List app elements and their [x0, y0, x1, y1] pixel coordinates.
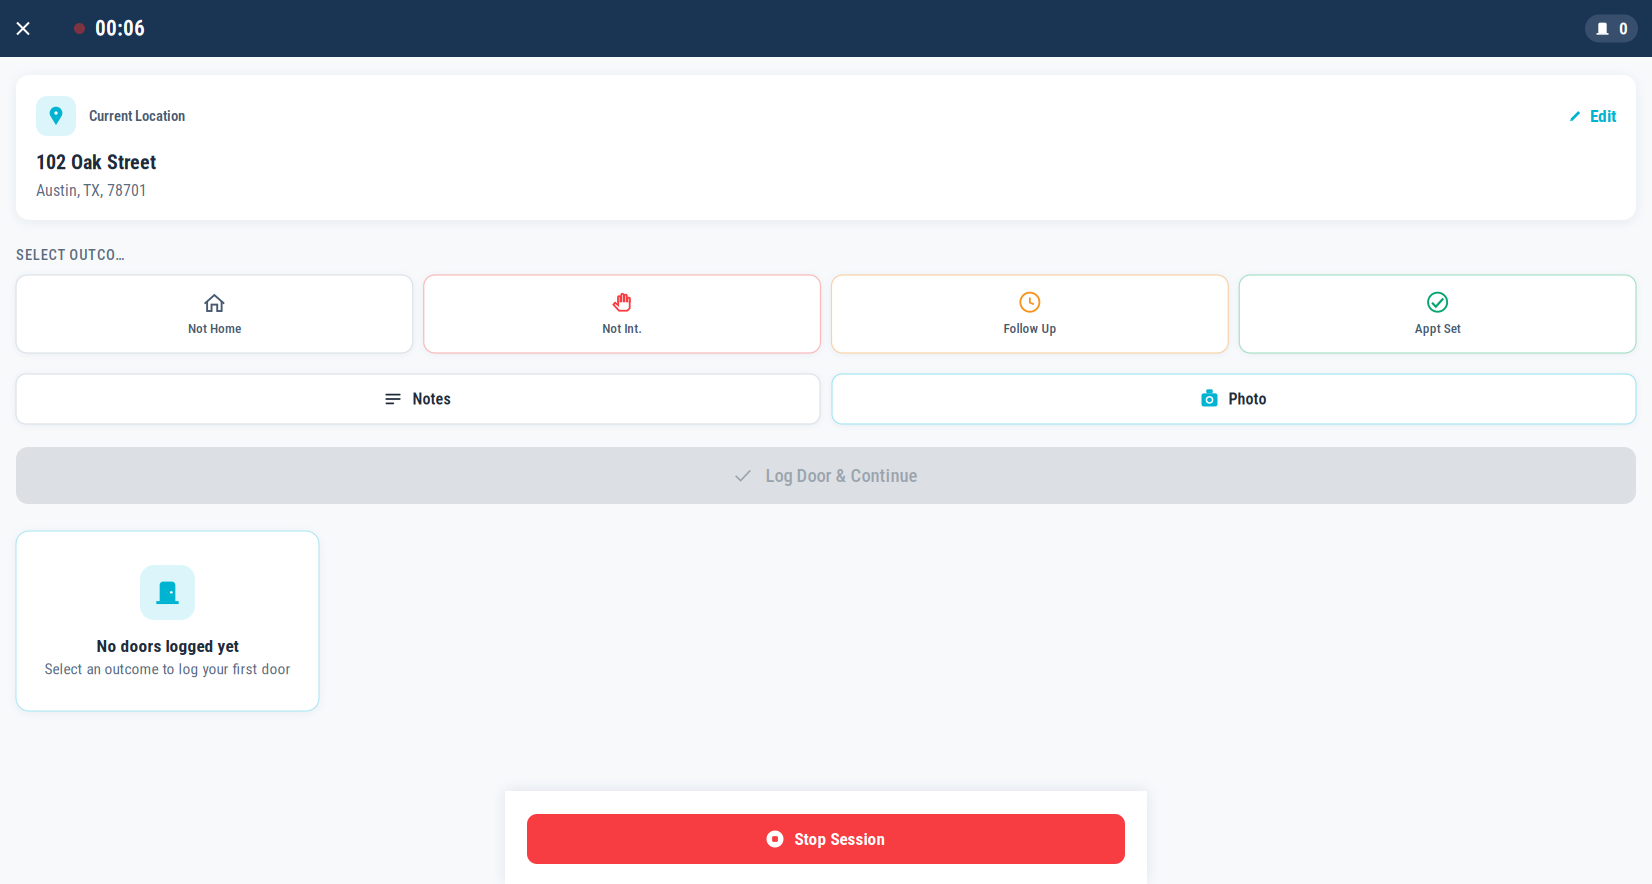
button[interactable]: Edit	[1569, 106, 1616, 126]
staticText: Appt Set	[1415, 321, 1461, 336]
button[interactable]: Not Int.	[424, 275, 821, 353]
staticText: Not Home	[188, 321, 241, 336]
button[interactable]: Not Home	[16, 275, 413, 353]
button[interactable]: Photo	[832, 374, 1636, 424]
staticText: Select an outcome to log your first door	[44, 660, 290, 678]
staticText: 102 Oak Street	[36, 151, 156, 174]
staticText: No doors logged yet	[96, 636, 238, 656]
staticText: Follow Up	[1003, 321, 1056, 336]
button[interactable]: Close	[0, 5, 46, 51]
staticText: Notes	[412, 390, 450, 408]
button[interactable]: Appt Set	[1239, 275, 1636, 353]
button[interactable]: Notes	[16, 374, 820, 424]
staticText: Photo	[1228, 390, 1266, 408]
button[interactable]: Doors logged: 0	[1585, 14, 1638, 42]
staticText: 0	[1619, 18, 1628, 39]
staticText: SELECT OUTCOME	[16, 246, 134, 264]
staticText: Stop Session	[794, 829, 885, 849]
staticText: Edit	[1590, 106, 1616, 126]
staticText: Not Int.	[602, 321, 642, 336]
staticText: 00:06	[95, 16, 145, 41]
button[interactable]: Follow Up	[831, 275, 1228, 353]
button[interactable]: Log Door & Continue	[16, 447, 1636, 504]
button[interactable]: Stop Session	[527, 814, 1125, 864]
staticText: Log Door & Continue	[765, 465, 917, 486]
staticText: Austin, TX, 78701	[36, 181, 147, 200]
staticText: Current Location	[89, 107, 185, 125]
